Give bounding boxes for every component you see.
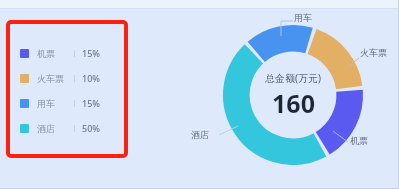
staticText: 火车票 [37, 73, 64, 84]
staticText: 10% [82, 72, 100, 84]
button[interactable]: 酒店 [20, 122, 118, 134]
button[interactable]: 火车票 [360, 47, 387, 58]
staticText: 15% [82, 97, 100, 109]
staticText: 总金额(万元) [265, 71, 321, 85]
button[interactable]: 酒店 [191, 129, 209, 140]
staticText: 用车 [294, 12, 312, 23]
button[interactable]: 火车票 [20, 72, 118, 84]
staticText: 酒店 [191, 129, 209, 140]
staticText: 用车 [37, 98, 55, 109]
staticText: 火车票 [360, 47, 387, 58]
button[interactable]: 机票 [20, 47, 118, 59]
staticText: 15% [82, 47, 100, 59]
staticText: 160 [272, 86, 315, 120]
button[interactable]: 用车 [294, 12, 312, 23]
button[interactable]: 机票 [350, 135, 368, 146]
staticText: 机票 [37, 48, 55, 59]
staticText: 50% [82, 122, 100, 134]
button[interactable]: Expense donut chart [223, 25, 363, 165]
button[interactable]: 用车 [20, 97, 118, 109]
staticText: 机票 [350, 135, 368, 146]
staticText: 酒店 [37, 123, 55, 134]
